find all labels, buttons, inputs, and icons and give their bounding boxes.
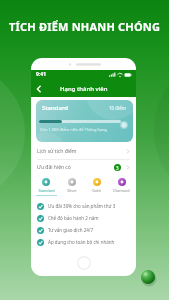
button[interactable]: Standard xyxy=(36,100,133,142)
staticText: Còn 1.000 điểm nữa để Thăng hạng xyxy=(40,127,108,132)
staticText: TÍCH ĐIỂM NHANH CHÓNG xyxy=(9,19,161,34)
button[interactable]: Silver xyxy=(59,178,84,196)
button[interactable]: Standard xyxy=(33,178,59,196)
staticText: Standard xyxy=(42,104,69,112)
staticText: Ưu đãi hiện có xyxy=(37,164,71,171)
staticText: Silver xyxy=(67,188,77,193)
staticText: Diamond xyxy=(113,188,130,193)
staticText: Ưu đãi 30% cho sản phẩm thứ 3 xyxy=(48,203,116,209)
staticText: Áp dụng cho toàn bộ chi nhánh xyxy=(48,239,115,245)
button[interactable]: Ưu đãi hiện có xyxy=(31,160,136,175)
staticText: Chế độ bảo hành 2 năm xyxy=(48,215,99,221)
button[interactable]: Back xyxy=(32,83,46,97)
button[interactable]: Gold xyxy=(84,178,109,196)
button[interactable]: Diamond xyxy=(109,178,134,196)
staticText: Gold xyxy=(92,188,101,193)
staticText: 3 xyxy=(116,165,119,171)
staticText: 9:41 xyxy=(36,71,46,78)
staticText: Hạng thành viên xyxy=(60,85,108,93)
staticText: Lịch sử tích điểm xyxy=(37,148,77,155)
button[interactable]: Lịch sử tích điểm xyxy=(31,144,136,159)
staticText: Tư vấn giao dịch 24/7 xyxy=(48,227,94,233)
staticText: Standard xyxy=(38,188,55,193)
staticText: 10 điểm xyxy=(109,105,127,111)
